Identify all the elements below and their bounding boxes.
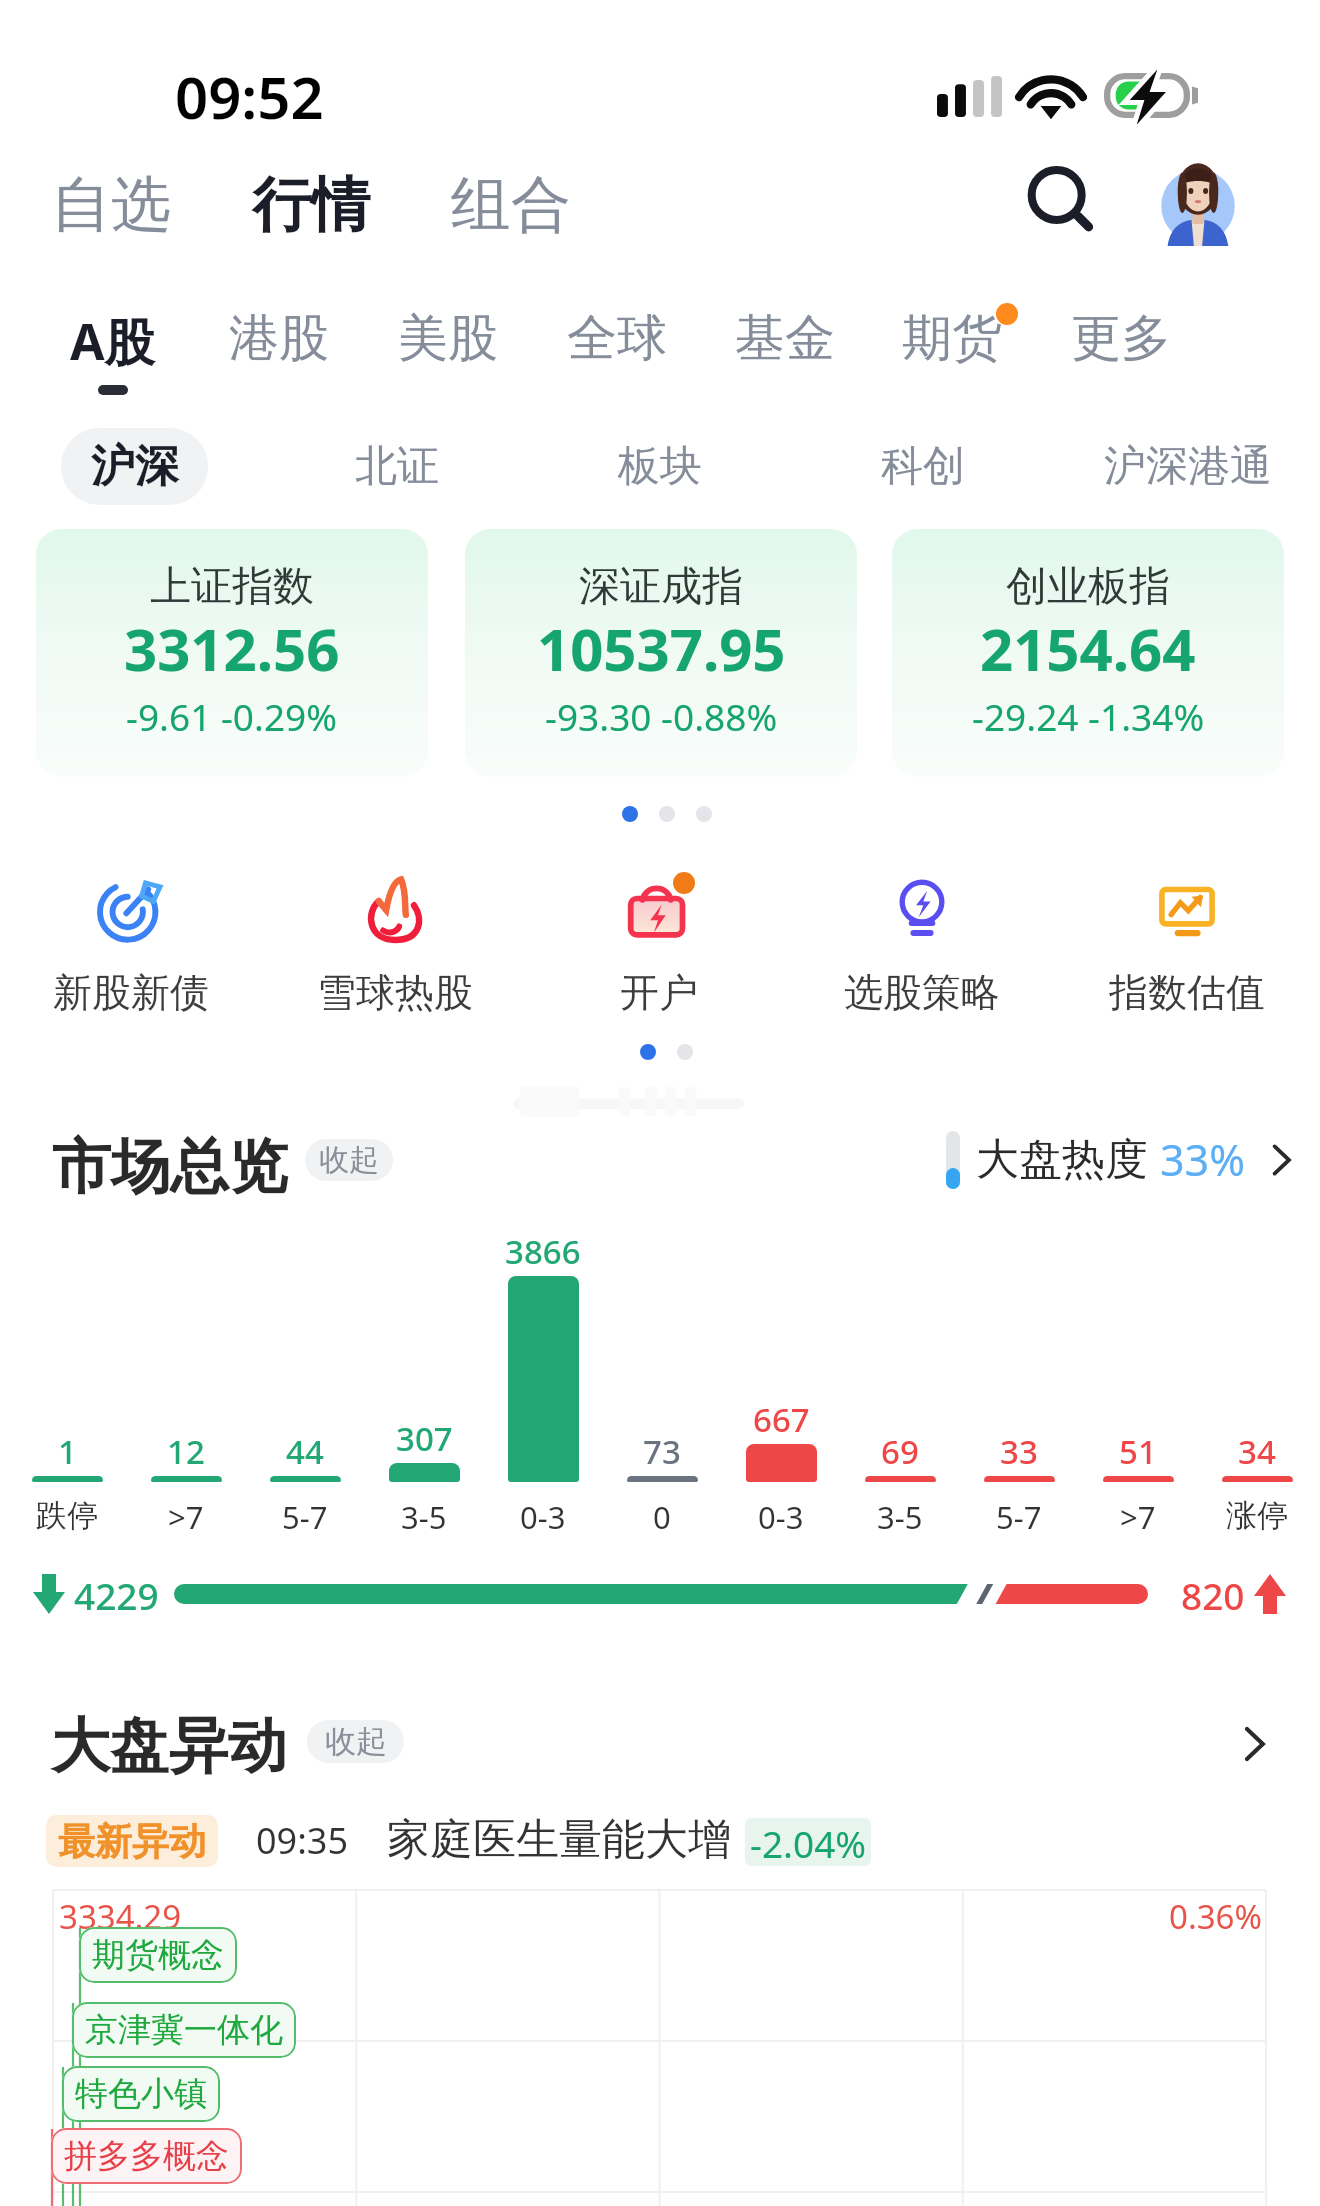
staticText: -2.04% xyxy=(750,1818,867,1866)
button[interactable]: 期货概念 xyxy=(79,1927,237,1983)
button[interactable]: 大盘热度 xyxy=(946,1130,1301,1189)
staticText: 自选 xyxy=(51,167,171,243)
staticText: 3-5 xyxy=(877,1496,923,1538)
button[interactable]: 雪球热股 xyxy=(295,872,495,1017)
staticText: 新股新债 xyxy=(53,968,209,1017)
staticText: 跌停 xyxy=(36,1496,98,1535)
button[interactable]: 自选 xyxy=(33,159,189,251)
staticText: 5-7 xyxy=(282,1496,328,1538)
button[interactable]: Profile xyxy=(1152,154,1244,246)
staticText: 沪深 xyxy=(91,439,179,494)
staticText: 行情 xyxy=(252,168,370,242)
button[interactable]: 沪深 xyxy=(61,428,208,505)
staticText: 市场总览 xyxy=(52,1130,288,1204)
button[interactable]: 选股策略 xyxy=(822,872,1022,1017)
staticText: 3866 xyxy=(505,1229,581,1274)
staticText: 5-7 xyxy=(996,1496,1042,1538)
button[interactable]: 京津冀一体化 xyxy=(72,2002,296,2058)
staticText: 307 xyxy=(396,1416,453,1461)
staticText: 港股 xyxy=(229,307,329,370)
staticText: 更多 xyxy=(1071,307,1171,370)
staticText: 0.36% xyxy=(1169,1894,1262,1939)
staticText: 0 xyxy=(653,1496,671,1538)
staticText: 深证成指 xyxy=(579,561,743,613)
staticText: 大盘热度 xyxy=(976,1133,1148,1187)
staticText: 全球 xyxy=(567,307,667,370)
button[interactable]: 更多 xyxy=(1057,301,1185,376)
button[interactable]: 组合 xyxy=(433,159,589,251)
button[interactable]: 期货 xyxy=(888,301,1016,376)
button[interactable]: 基金 xyxy=(721,301,849,376)
staticText: 板块 xyxy=(618,440,702,493)
staticText: 特色小镇 xyxy=(75,2073,207,2115)
staticText: >7 xyxy=(1120,1496,1156,1538)
staticText: 33 xyxy=(1000,1429,1038,1474)
staticText: A股 xyxy=(70,307,155,375)
staticText: 12 xyxy=(167,1429,205,1474)
button[interactable]: 开户 xyxy=(559,872,759,1017)
button[interactable]: 沪深港通 xyxy=(1090,428,1286,505)
staticText: 开户 xyxy=(620,968,698,1017)
staticText: 2154.64 xyxy=(980,609,1196,688)
button[interactable]: 拼多多概念 xyxy=(51,2128,242,2184)
staticText: 家庭医生量能大增 xyxy=(387,1813,731,1867)
staticText: 北证 xyxy=(355,440,439,493)
staticText: 涨停 xyxy=(1226,1496,1288,1535)
staticText: 美股 xyxy=(398,307,498,370)
staticText: 69 xyxy=(881,1429,919,1474)
button[interactable]: 板块 xyxy=(604,428,716,505)
staticText: 0-3 xyxy=(758,1496,804,1538)
staticText: 沪深港通 xyxy=(1104,440,1272,493)
button[interactable]: Search xyxy=(1016,157,1102,243)
staticText: 拼多多概念 xyxy=(64,2135,229,2177)
button[interactable]: 北证 xyxy=(341,428,453,505)
staticText: 最新异动 xyxy=(58,1818,206,1865)
button[interactable]: 上证指数 xyxy=(36,529,428,777)
staticText: 820 xyxy=(1181,1570,1245,1620)
staticText: 基金 xyxy=(735,307,835,370)
staticText: 51 xyxy=(1119,1429,1157,1474)
staticText: -9.61 -0.29% xyxy=(126,691,338,741)
staticText: 09:52 xyxy=(175,57,324,136)
button[interactable]: 收起 xyxy=(305,1139,393,1181)
staticText: 1 xyxy=(58,1429,77,1474)
staticText: 雪球热股 xyxy=(317,968,473,1017)
staticText: 创业板指 xyxy=(1006,561,1170,613)
staticText: 收起 xyxy=(319,1141,379,1179)
button[interactable]: 全球 xyxy=(553,301,681,376)
staticText: 期货 xyxy=(902,307,1002,370)
staticText: 73 xyxy=(643,1429,681,1474)
button[interactable]: 指数估值 xyxy=(1087,872,1287,1017)
button[interactable]: 特色小镇 xyxy=(62,2066,220,2122)
staticText: -29.24 -1.34% xyxy=(972,691,1205,741)
staticText: 选股策略 xyxy=(844,968,1000,1017)
staticText: 上证指数 xyxy=(150,561,314,613)
staticText: 34 xyxy=(1238,1429,1276,1474)
button[interactable]: 行情 xyxy=(234,160,388,250)
button[interactable]: A股 xyxy=(56,301,169,401)
button[interactable]: More anomalies xyxy=(1230,1720,1278,1768)
button[interactable]: 科创 xyxy=(867,428,979,505)
staticText: 44 xyxy=(286,1429,324,1474)
staticText: 指数估值 xyxy=(1109,968,1265,1017)
staticText: -93.30 -0.88% xyxy=(545,691,778,741)
staticText: 京津冀一体化 xyxy=(85,2009,283,2051)
button[interactable]: 新股新债 xyxy=(31,872,231,1017)
button[interactable]: 美股 xyxy=(384,301,512,376)
staticText: >7 xyxy=(168,1496,204,1538)
staticText: 0-3 xyxy=(520,1496,566,1538)
staticText: 4229 xyxy=(74,1570,159,1620)
staticText: 10537.95 xyxy=(537,609,786,688)
staticText: 33% xyxy=(1160,1130,1245,1189)
staticText: 667 xyxy=(753,1397,810,1442)
staticText: 09:35 xyxy=(256,1816,349,1865)
button[interactable]: 创业板指 xyxy=(892,529,1284,777)
staticText: 大盘异动 xyxy=(51,1709,287,1783)
staticText: 3334.29 xyxy=(59,1894,182,1939)
staticText: 收起 xyxy=(325,1722,387,1761)
button[interactable]: 港股 xyxy=(215,301,343,376)
button[interactable]: 收起 xyxy=(307,1720,404,1763)
button[interactable]: 深证成指 xyxy=(465,529,857,777)
staticText: 3-5 xyxy=(401,1496,447,1538)
staticText: 科创 xyxy=(881,440,965,493)
